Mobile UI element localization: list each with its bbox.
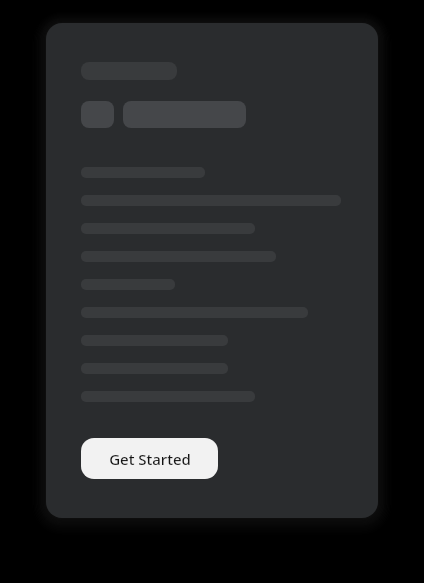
staticText: Get Started: [109, 449, 191, 469]
button[interactable]: Get Started: [81, 438, 218, 479]
